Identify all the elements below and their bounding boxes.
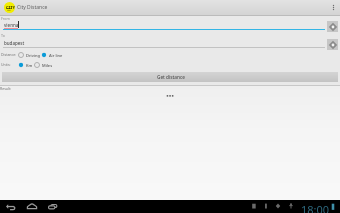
staticText: 18:00 [301,202,330,213]
button[interactable]: Use current location for To [327,39,338,50]
button[interactable]: Use current location for From [327,21,338,32]
staticText: To [1,33,5,38]
staticText: Units: [1,62,11,67]
staticText: CITY [6,5,15,10]
button[interactable]: Air line [41,50,63,60]
staticText: From [1,16,10,21]
staticText: Distance: [1,52,17,57]
staticText: budapest [4,40,25,46]
staticText: City Distance [17,4,48,11]
staticText: Air line [49,53,63,58]
button[interactable]: Home [25,202,38,211]
button[interactable]: Km [18,60,33,70]
staticText: Miles [42,63,53,68]
staticText: vienna [4,22,19,28]
staticText: Result: [0,86,12,91]
button[interactable]: Recent apps [46,202,59,211]
button[interactable]: Back [4,202,17,211]
staticText: Get distance [157,74,185,80]
button[interactable]: Miles [34,60,53,70]
button[interactable]: More options [326,0,340,15]
staticText: Driving [26,53,40,58]
button[interactable]: Driving [18,50,40,60]
staticText: Km [26,63,33,68]
button[interactable]: Get distance [2,72,338,82]
